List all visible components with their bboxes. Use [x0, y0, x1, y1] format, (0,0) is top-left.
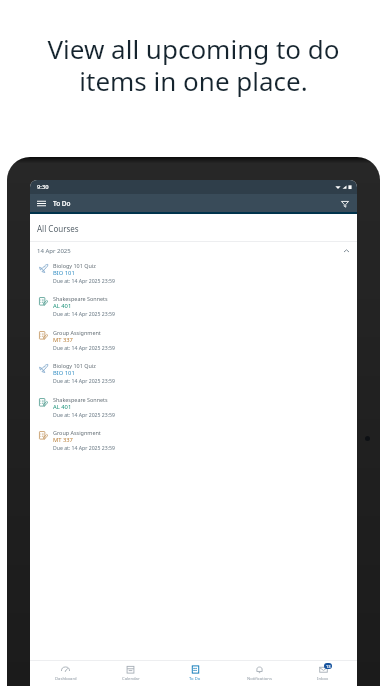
button[interactable]: 13 [291, 665, 355, 682]
staticText: To Do [53, 199, 71, 208]
button[interactable]: Shakespeare Sonnets [30, 295, 357, 328]
staticText: Due at: 14 Apr 2025 23:59 [53, 444, 115, 451]
staticText: AL 401 [53, 403, 72, 411]
staticText: All Courses [37, 223, 79, 234]
button[interactable]: To Do [163, 665, 227, 682]
staticText: BIO 101 [53, 269, 75, 277]
staticText: 9:30 [37, 183, 49, 191]
staticText: Due at: 14 Apr 2025 23:59 [53, 411, 115, 418]
staticText: Calendar [122, 676, 140, 682]
staticText: Due at: 14 Apr 2025 23:59 [53, 310, 115, 317]
staticText: 13 [326, 664, 331, 669]
button[interactable]: Menu [35, 197, 48, 210]
staticText: View all upcoming to do items in one pla… [47, 31, 340, 99]
staticText: Notifications [247, 676, 272, 682]
button[interactable]: Biology 101 Quiz [30, 362, 357, 395]
staticText: Inbox [317, 676, 329, 682]
button[interactable]: Dashboard [33, 665, 98, 682]
staticText: Dashboard [55, 676, 77, 682]
button[interactable]: Calendar [98, 665, 163, 682]
button[interactable]: Group Assignment [30, 429, 357, 462]
staticText: MT 337 [53, 436, 73, 444]
staticText: Due at: 14 Apr 2025 23:59 [53, 344, 115, 351]
button[interactable]: Notifications [227, 665, 291, 682]
staticText: Shakespeare Sonnets [53, 396, 108, 403]
staticText: Due at: 14 Apr 2025 23:59 [53, 277, 115, 284]
staticText: Biology 101 Quiz [53, 362, 96, 369]
staticText: Group Assignment [53, 329, 101, 336]
staticText: To Do [189, 676, 201, 682]
button[interactable]: Group Assignment [30, 329, 357, 362]
staticText: 14 Apr 2025 [37, 247, 71, 255]
button[interactable]: Biology 101 Quiz [30, 262, 357, 295]
staticText: Biology 101 Quiz [53, 262, 96, 269]
staticText: Shakespeare Sonnets [53, 295, 108, 302]
button[interactable]: Filter [339, 198, 351, 210]
staticText: BIO 101 [53, 369, 75, 377]
staticText: Due at: 14 Apr 2025 23:59 [53, 377, 115, 384]
staticText: MT 337 [53, 336, 73, 344]
button[interactable]: Shakespeare Sonnets [30, 396, 357, 429]
staticText: Group Assignment [53, 429, 101, 436]
staticText: AL 401 [53, 302, 72, 310]
